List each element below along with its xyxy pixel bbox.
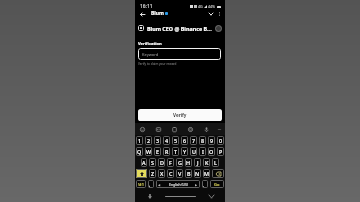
button[interactable]: More options — [215, 10, 223, 18]
button[interactable]: 9 — [208, 136, 215, 145]
button[interactable]: Settings — [186, 125, 194, 133]
button[interactable]: 8 — [199, 136, 206, 145]
button[interactable]: Keyword — [138, 48, 221, 60]
button[interactable]: E — [154, 147, 161, 156]
staticText: F — [169, 159, 172, 166]
staticText: Verify — [173, 112, 187, 118]
staticText: W — [146, 148, 152, 155]
button[interactable]: M — [203, 169, 210, 178]
staticText: ▶ — [195, 183, 198, 186]
staticText: 4 — [165, 137, 169, 144]
staticText: M — [204, 170, 209, 177]
button[interactable]: Z — [149, 169, 156, 178]
staticText: Keyword — [142, 52, 159, 57]
staticText: T — [174, 148, 178, 155]
staticText: . — [203, 182, 205, 188]
staticText: H — [186, 159, 191, 166]
button[interactable]: Channel avatar — [215, 25, 222, 32]
button[interactable] — [212, 169, 224, 178]
button[interactable]: , — [148, 180, 154, 188]
button[interactable]: !#1 — [136, 180, 146, 188]
button[interactable]: K — [203, 158, 210, 167]
button[interactable]: T — [172, 147, 179, 156]
staticText: X — [160, 170, 164, 177]
staticText: B — [187, 170, 191, 177]
button[interactable]: F — [167, 158, 174, 167]
staticText: 3 — [156, 137, 160, 144]
button[interactable]: Y — [181, 147, 188, 156]
staticText: C — [169, 170, 173, 177]
staticText: 1 — [138, 137, 142, 144]
staticText: O — [209, 148, 214, 155]
button[interactable]: 0 — [217, 136, 224, 145]
staticText: 9 — [210, 137, 214, 144]
staticText: K — [205, 159, 209, 166]
button[interactable]: W — [145, 147, 152, 156]
button[interactable]: I — [199, 147, 206, 156]
button[interactable]: 6 — [181, 136, 188, 145]
button[interactable]: Go — [210, 180, 224, 188]
staticText: D — [160, 159, 164, 166]
button[interactable]: J — [194, 158, 201, 167]
staticText: English (US) — [169, 182, 188, 187]
button[interactable]: Voice input — [202, 125, 210, 133]
button[interactable]: G — [176, 158, 183, 167]
staticText: 44% — [208, 4, 216, 9]
staticText: S — [151, 159, 154, 166]
button[interactable]: Clipboard — [170, 125, 178, 133]
button[interactable]: X — [158, 169, 165, 178]
button[interactable]: More keyboard options — [216, 126, 222, 132]
staticText: E — [156, 148, 160, 155]
staticText: !#1 — [138, 182, 144, 187]
button[interactable]: C — [167, 169, 174, 178]
staticText: , — [149, 182, 151, 188]
button[interactable]: Back — [207, 192, 215, 200]
staticText: P — [219, 148, 223, 155]
button[interactable]: O — [208, 147, 215, 156]
button[interactable]: 5 — [172, 136, 179, 145]
button[interactable]: S — [149, 158, 156, 167]
button[interactable] — [136, 169, 147, 178]
button[interactable]: ◀ — [156, 180, 200, 188]
staticText: Y — [183, 148, 187, 155]
button[interactable]: 4 — [163, 136, 170, 145]
staticText: Blum — [151, 10, 164, 17]
button[interactable]: D — [158, 158, 165, 167]
staticText: 6 — [183, 137, 187, 144]
button[interactable]: Verify — [138, 109, 222, 121]
staticText: G — [178, 159, 182, 166]
button[interactable]: U — [190, 147, 197, 156]
staticText: Verify to claim your reward — [138, 62, 177, 66]
button[interactable]: L — [212, 158, 219, 167]
staticText: V — [178, 170, 182, 177]
button[interactable]: 3 — [154, 136, 161, 145]
staticText: 8 — [201, 137, 205, 144]
button[interactable]: . — [202, 180, 208, 188]
button[interactable]: P — [217, 147, 224, 156]
staticText: I — [202, 148, 204, 155]
button[interactable]: 1 — [136, 136, 143, 145]
button[interactable]: Emoji — [138, 125, 146, 133]
button[interactable]: B — [185, 169, 192, 178]
button[interactable]: N — [194, 169, 201, 178]
staticText: L — [214, 159, 217, 166]
button[interactable]: Hide keyboard — [146, 192, 154, 200]
staticText: Go — [214, 182, 220, 187]
button[interactable]: Expand — [206, 9, 215, 18]
button[interactable]: 7 — [190, 136, 197, 145]
button[interactable]: H — [185, 158, 192, 167]
staticText: Q — [137, 148, 142, 155]
button[interactable]: Q — [136, 147, 143, 156]
button[interactable]: 2 — [145, 136, 152, 145]
staticText: 2 — [147, 137, 151, 144]
staticText: Blum CEO @ Binance B... — [147, 25, 212, 32]
staticText: Verification — [138, 41, 162, 47]
button[interactable]: R — [163, 147, 170, 156]
staticText: 7 — [192, 137, 196, 144]
button[interactable]: A — [141, 158, 147, 167]
staticText: ◀ — [158, 183, 161, 186]
button[interactable]: GIF — [154, 125, 162, 133]
button[interactable]: Back — [138, 10, 146, 18]
staticText: 0 — [219, 137, 223, 144]
button[interactable]: V — [176, 169, 183, 178]
